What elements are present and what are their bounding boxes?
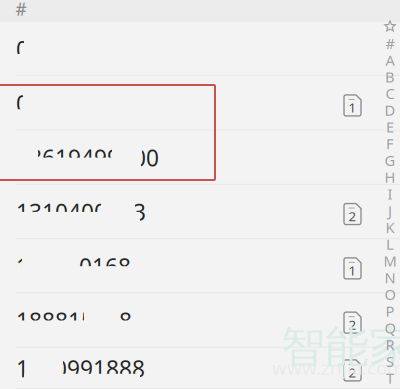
staticText: P [385, 301, 394, 321]
staticText: S [386, 351, 394, 371]
button[interactable]: 16 00168 [0, 239, 400, 293]
staticText: 18 0991888 [16, 353, 145, 383]
staticText: 2 [348, 363, 356, 381]
staticText: B [385, 67, 395, 86]
staticText: +8619499000 [16, 143, 159, 173]
button[interactable]: 1310400063 [0, 185, 400, 239]
staticText: G [384, 151, 395, 170]
staticText: 16 00168 [16, 251, 131, 281]
staticText: 1888158 8 [16, 306, 132, 336]
staticText: 1 [348, 261, 356, 279]
staticText: C [385, 84, 394, 103]
staticText: 2 [348, 207, 356, 225]
staticText: N [384, 268, 395, 287]
staticText: O [384, 285, 395, 304]
staticText: Q [384, 318, 395, 338]
staticText: 05800000000 [16, 88, 159, 118]
button[interactable]: Alphabet index [380, 18, 400, 386]
staticText: # [385, 33, 394, 53]
staticText: 1310400063 [16, 197, 146, 227]
button[interactable]: 05800000000 [0, 76, 400, 131]
staticText: M [383, 251, 396, 271]
staticText: E [386, 117, 394, 137]
staticText: T [386, 368, 394, 388]
button[interactable]: 1888158 8 [0, 293, 400, 348]
staticText: R [385, 335, 394, 354]
staticText: www.znjia.com [272, 355, 400, 380]
staticText: # [15, 0, 26, 20]
staticText: L [386, 234, 394, 254]
staticText: F [386, 134, 394, 153]
staticText: 03500000000 [16, 34, 159, 64]
button[interactable]: +8619499000 [0, 131, 400, 185]
staticText: 2 [348, 316, 356, 333]
staticText: J [388, 201, 392, 220]
staticText: 1 [348, 99, 356, 116]
staticText: D [384, 100, 395, 120]
staticText: K [385, 218, 394, 237]
staticText: 智能家 [281, 320, 400, 374]
staticText: H [384, 167, 395, 187]
staticText: A [385, 50, 394, 70]
button[interactable]: 03500000000 [0, 22, 400, 76]
button[interactable]: 18 0991888 [0, 348, 400, 389]
staticText: I [387, 184, 392, 204]
